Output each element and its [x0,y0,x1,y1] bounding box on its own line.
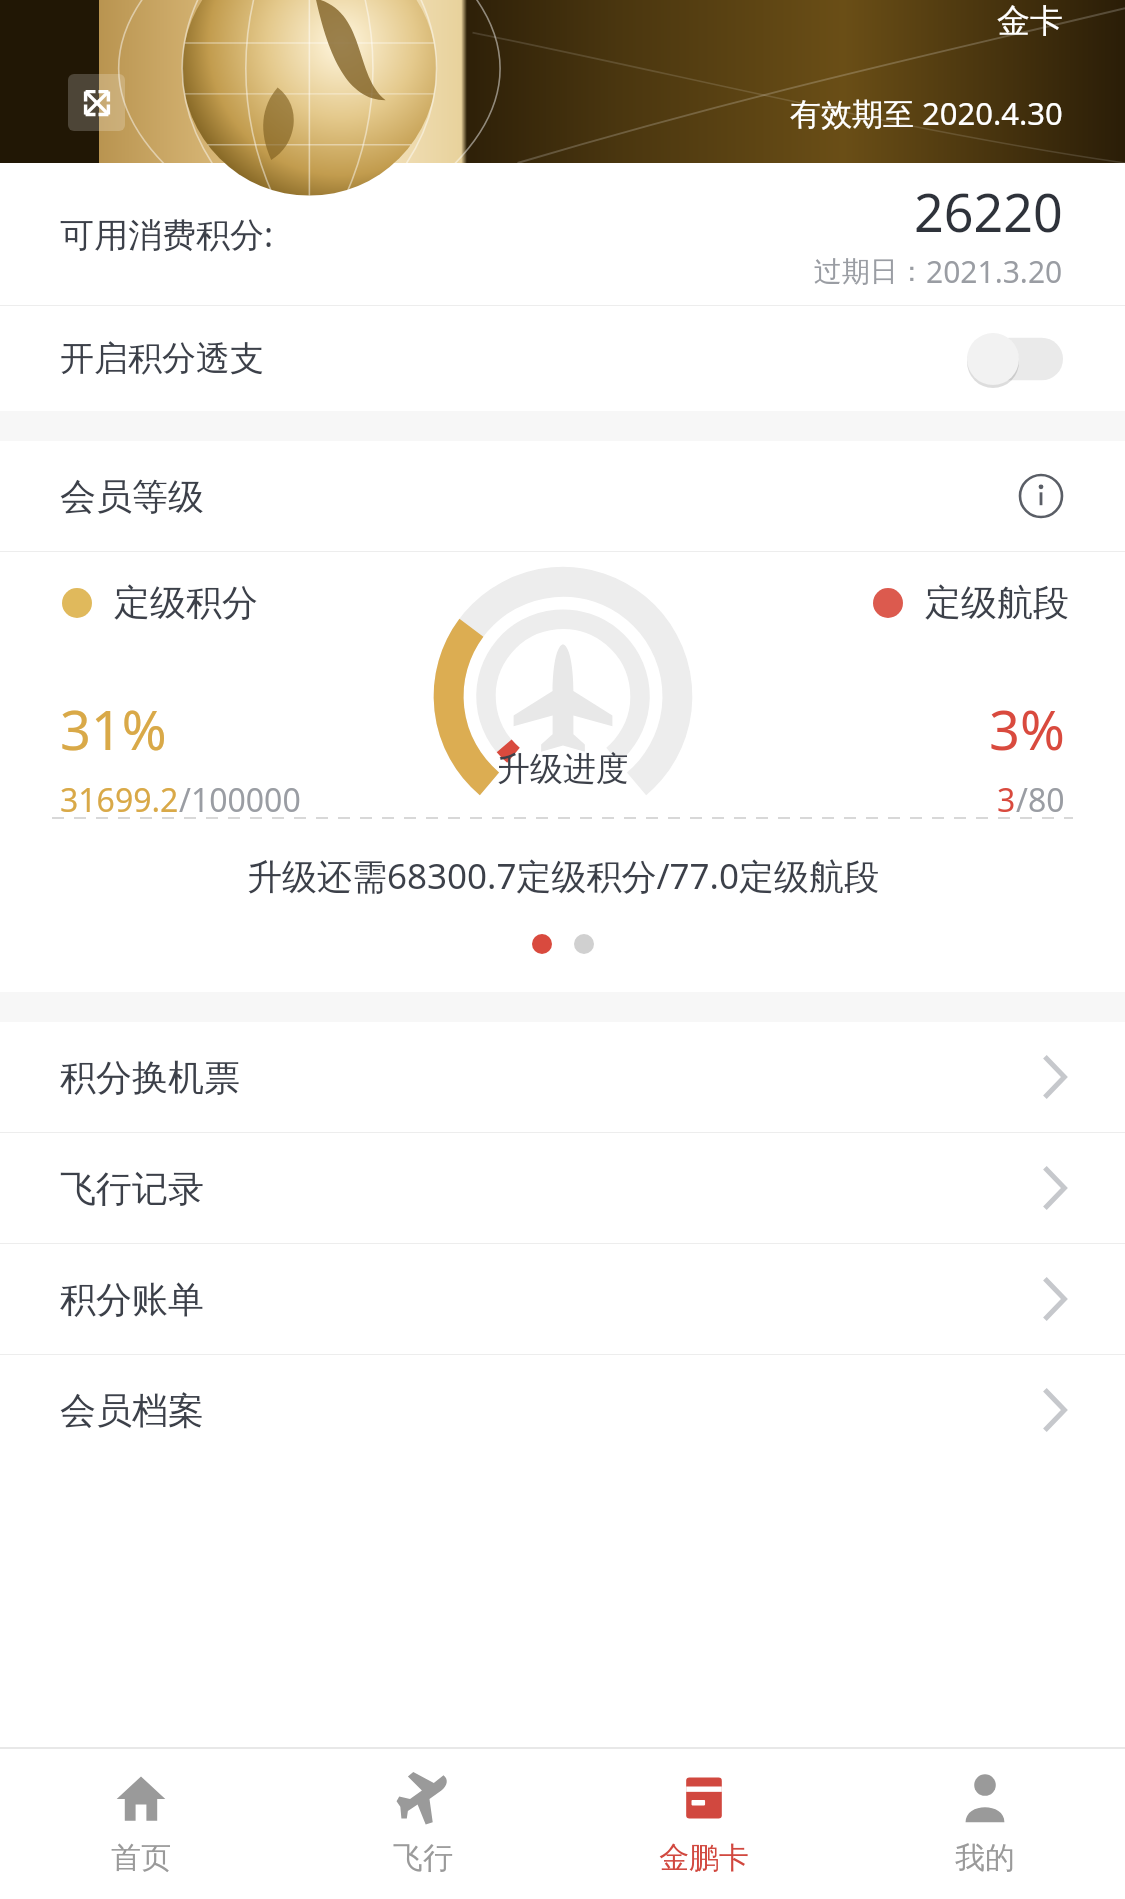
staticText: 定级积分 [114,580,258,625]
staticText: 飞行 [393,1839,453,1877]
staticText: 我的 [955,1839,1015,1877]
button[interactable]: Membership level info [1015,470,1067,522]
button[interactable]: 我的 [844,1749,1125,1899]
staticText: 会员档案 [60,1388,204,1433]
staticText: 31699.2 [60,778,179,822]
staticText: 过期日： [814,254,926,289]
staticText: 积分账单 [60,1277,204,1322]
staticText: /80 [1016,778,1065,822]
button[interactable]: 会员档案 [0,1355,1125,1465]
staticText: 31% [60,692,167,766]
button[interactable]: 会员等级 [0,441,1125,551]
staticText: 3 [997,778,1016,822]
staticText: /100000 [179,778,301,822]
button[interactable]: 飞行记录 [0,1133,1125,1243]
staticText: 金鹏卡 [659,1839,749,1877]
staticText: 3% [989,692,1065,766]
staticText: 会员等级 [60,474,204,519]
button[interactable]: 积分账单 [0,1244,1125,1354]
button[interactable]: 积分换机票 [0,1022,1125,1132]
staticText: 可用消费积分: [60,211,274,257]
button[interactable]: Toggle points overdraft [967,333,1063,385]
staticText: 升级还需68300.7定级积分/77.0定级航段 [247,852,879,900]
staticText: 升级进度 [497,748,629,790]
staticText: 开启积分透支 [60,337,264,380]
button[interactable]: 开启积分透支 [0,306,1125,411]
staticText: 2021.3.20 [926,251,1063,292]
button[interactable]: 金鹏卡 [563,1749,844,1899]
staticText: 定级航段 [925,580,1069,625]
button[interactable]: 可用消费积分: [0,163,1125,305]
button[interactable]: Expand card [68,74,125,131]
staticText: 26220 [914,176,1063,247]
staticText: 首页 [111,1839,171,1877]
staticText: 飞行记录 [60,1166,204,1211]
staticText: 有效期至 2020.4.30 [790,92,1063,134]
staticText: 金卡 [997,0,1063,42]
staticText: 积分换机票 [60,1055,240,1100]
button[interactable]: 首页 [0,1749,282,1899]
button[interactable]: 飞行 [282,1749,563,1899]
button[interactable]: Expand card [0,0,1125,163]
